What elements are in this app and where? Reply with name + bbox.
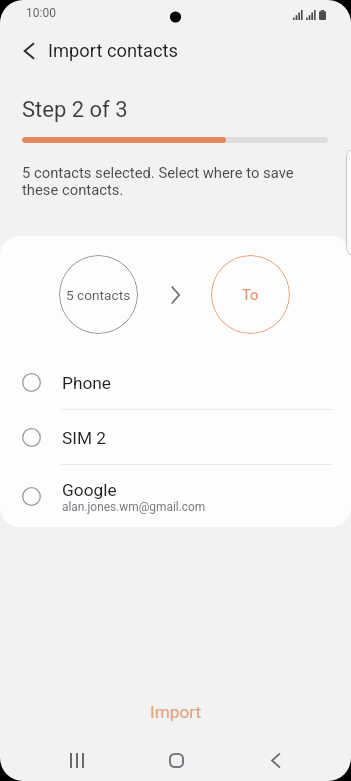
button[interactable]: Back: [11, 33, 46, 68]
staticText: 5 contacts: [66, 287, 131, 303]
staticText: 5 contacts selected. Select where to sav…: [22, 164, 302, 198]
button[interactable]: Recents: [55, 740, 99, 780]
button[interactable]: SIM 2: [0, 410, 351, 465]
button[interactable]: Import: [0, 694, 351, 730]
staticText: Import: [150, 702, 202, 722]
staticText: Step 2 of 3: [22, 97, 128, 123]
button[interactable]: Phone: [0, 355, 351, 410]
staticText: Google: [62, 480, 117, 500]
staticText: Import contacts: [48, 40, 178, 61]
button[interactable]: Google: [0, 469, 351, 524]
staticText: SIM 2: [62, 428, 107, 448]
staticText: To: [242, 286, 259, 303]
staticText: Phone: [62, 373, 112, 393]
staticText: alan.jones.wm@gmail.com: [62, 500, 206, 514]
button[interactable]: To: [211, 255, 290, 334]
button[interactable]: Home: [154, 740, 198, 780]
button[interactable]: 5 contacts: [59, 255, 138, 334]
button[interactable]: Back: [253, 740, 297, 780]
staticText: 10:00: [26, 6, 56, 20]
